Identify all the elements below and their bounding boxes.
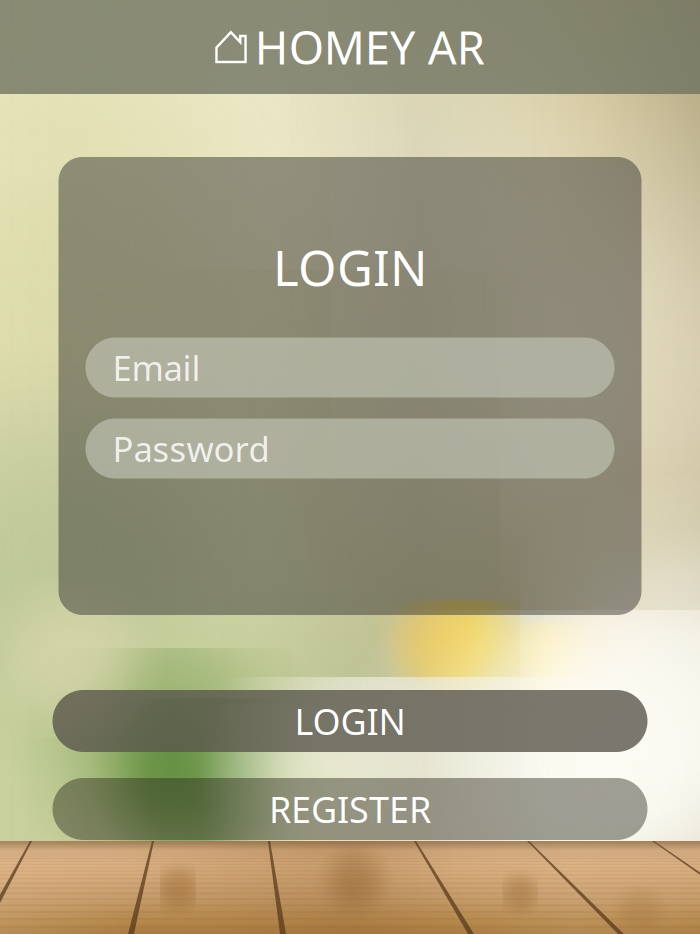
button[interactable]: LOGIN xyxy=(52,690,647,752)
staticText: LOGIN xyxy=(294,697,405,745)
staticText: LOGIN xyxy=(273,234,427,299)
staticText: Password xyxy=(112,425,269,471)
staticText: Email xyxy=(112,344,200,390)
staticText: REGISTER xyxy=(269,785,431,833)
staticText: HOMEY AR xyxy=(255,17,485,77)
button[interactable]: REGISTER xyxy=(52,778,647,840)
